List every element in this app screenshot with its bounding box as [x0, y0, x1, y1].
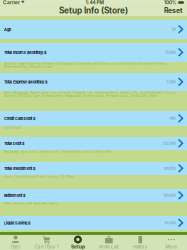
- staticText: 45,000: [164, 221, 175, 225]
- staticText: 401k, Pension, IRA, Roth IRA, Other: [4, 202, 57, 205]
- staticText: Setup: [71, 244, 85, 250]
- staticText: Total Investment $: [4, 166, 36, 171]
- staticText: More: [165, 244, 177, 250]
- staticText: Age: [4, 27, 11, 32]
- staticText: Setup Info (Store): [59, 5, 128, 15]
- button[interactable]: Can I Buy ?: [31, 235, 62, 250]
- staticText: Credit Card: [4, 126, 21, 129]
- staticText: 100%: [164, 0, 177, 5]
- button[interactable]: More: [156, 235, 187, 250]
- button[interactable]: Reset: [160, 4, 187, 17]
- staticText: Can I Buy ?: [35, 244, 59, 250]
- staticText: Total Debt $: [4, 141, 25, 146]
- button[interactable]: Total Investment $: [0, 162, 187, 175]
- staticText: 120,000: [163, 193, 175, 198]
- staticText: Credit Card Debt $: [4, 116, 36, 121]
- staticText: Reset: [164, 6, 183, 15]
- staticText: 1:44 PM: [85, 0, 103, 5]
- button[interactable]: Liquid Saving $: [0, 216, 187, 230]
- staticText: History: [133, 244, 148, 250]
- button[interactable]: Age: [0, 20, 187, 39]
- button[interactable]: Retirement $: [0, 189, 187, 202]
- staticText: 80,000: [164, 166, 175, 171]
- staticText: 252,000: [162, 141, 175, 146]
- staticText: Rent, Mortgage, Home Equity Line of Cred…: [4, 91, 175, 98]
- staticText: 13,000: [165, 50, 175, 55]
- staticText: 28: [171, 27, 175, 32]
- staticText: 7,000: [166, 80, 175, 84]
- button[interactable]: Setup: [62, 235, 93, 250]
- staticText: Retirement $: [4, 193, 26, 198]
- staticText: 480: [169, 116, 175, 121]
- button[interactable]: Total Income (Monthly) $: [0, 43, 187, 62]
- staticText: Mortgage, Auto Loan, Student Loan, Home …: [4, 150, 113, 153]
- staticText: Liquid Saving $: [4, 221, 31, 225]
- staticText: Wish List: [99, 244, 119, 250]
- staticText: User: [11, 244, 21, 250]
- button[interactable]: Total Expense (Monthly) $: [0, 73, 187, 91]
- staticText: Stock, Bond, Mutual Fund, Saving, CD, Ot…: [4, 175, 74, 178]
- button[interactable]: Wish List: [93, 235, 125, 250]
- staticText: Total Expense (Monthly) $: [4, 80, 48, 84]
- staticText: Carrier: [3, 0, 20, 5]
- button[interactable]: User: [0, 235, 31, 250]
- staticText: Monthly Take Home Pay, Alimony, Child Su…: [4, 62, 168, 69]
- staticText: Total Income (Monthly) $: [4, 50, 47, 55]
- button[interactable]: Total Debt $: [0, 137, 187, 150]
- button[interactable]: Credit Card Debt $: [0, 111, 187, 126]
- button[interactable]: History: [125, 235, 156, 250]
- staticText: ▼: [20, 0, 25, 5]
